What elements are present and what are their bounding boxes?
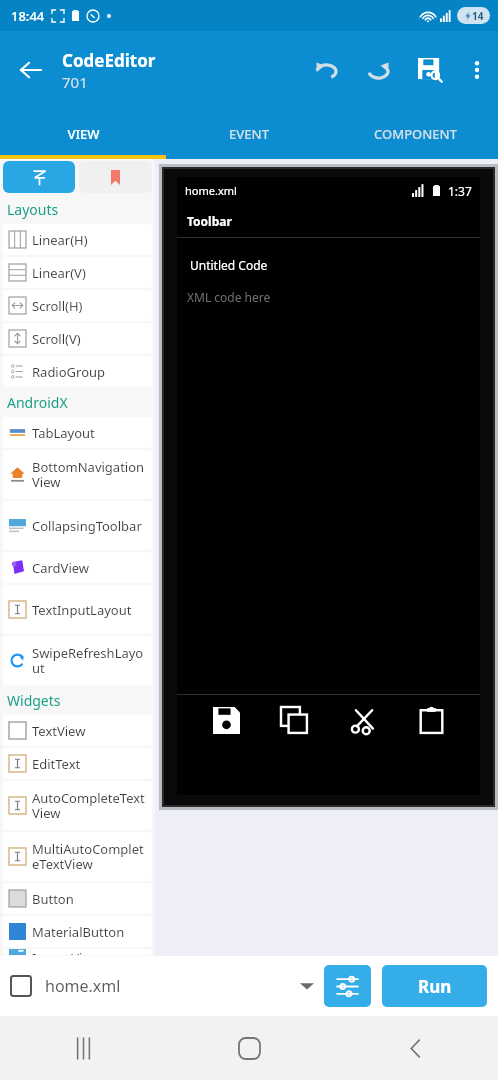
button[interactable]: EditText	[3, 748, 152, 779]
staticText: COMPONENT	[374, 125, 457, 143]
button[interactable]: MaterialButton	[3, 916, 152, 947]
button[interactable]: TabLayout	[3, 417, 152, 448]
button[interactable]: TextView	[3, 715, 152, 746]
staticText: EditText	[32, 755, 81, 773]
staticText: home.xml	[185, 183, 237, 198]
button[interactable]: Settings	[324, 965, 371, 1007]
button[interactable]: Paste	[411, 707, 451, 747]
staticText: Scroll(H)	[32, 297, 83, 315]
button[interactable]: Back	[0, 31, 62, 109]
button[interactable]: Recents	[0, 1016, 166, 1080]
button[interactable]: ImageView	[3, 949, 152, 955]
staticText: VIEW	[67, 125, 100, 143]
button[interactable]: COMPONENT	[332, 109, 498, 159]
staticText: XML code here	[187, 289, 271, 305]
staticText: 14	[472, 9, 484, 23]
staticText: TextInputLayout	[32, 601, 132, 619]
button[interactable]: Run	[382, 965, 487, 1007]
staticText: Scroll(V)	[32, 330, 81, 348]
button[interactable]: Save	[404, 44, 456, 96]
staticText: 18:44	[11, 7, 45, 25]
button[interactable]: BottomNavigationView	[3, 450, 152, 499]
staticText: RadioGroup	[32, 363, 106, 381]
button[interactable]: More options	[456, 44, 498, 96]
button[interactable]: CardView	[3, 552, 152, 583]
staticText: EVENT	[229, 125, 269, 143]
staticText: Widgets	[7, 691, 61, 710]
staticText: AndroidX	[7, 393, 68, 412]
staticText: TabLayout	[32, 424, 95, 442]
button[interactable]: Save	[206, 707, 246, 747]
staticText: Toolbar	[187, 213, 232, 229]
button[interactable]: TextInputLayout	[3, 585, 152, 634]
button[interactable]: AutoCompleteTextView	[3, 781, 152, 830]
button[interactable]: EVENT	[166, 109, 332, 159]
button[interactable]: Cut	[343, 707, 383, 747]
staticText: CollapsingToolbar	[32, 517, 142, 535]
button[interactable]: Copy	[274, 707, 314, 747]
button[interactable]: SwipeRefreshLayout	[3, 636, 152, 685]
staticText: Button	[32, 890, 74, 908]
staticText: CodeEditor	[62, 49, 156, 72]
staticText: TextView	[32, 722, 86, 740]
button[interactable]: Palette	[3, 161, 75, 193]
staticText: BottomNavigationView	[32, 458, 150, 491]
staticText: Untitled Code	[190, 257, 268, 273]
staticText: SwipeRefreshLayout	[32, 644, 150, 677]
button[interactable]: Scroll(H)	[3, 290, 152, 321]
staticText: MultiAutoCompleteTextView	[32, 840, 150, 873]
button[interactable]: Linear(H)	[3, 224, 152, 255]
staticText: Linear(V)	[32, 264, 86, 282]
button[interactable]: Redo	[352, 44, 404, 96]
button[interactable]: Button	[3, 883, 152, 914]
staticText: Linear(H)	[32, 231, 88, 249]
staticText: ImageView	[32, 949, 100, 955]
button[interactable]: home.xml	[11, 956, 324, 1016]
staticText: MaterialButton	[32, 923, 125, 941]
button[interactable]: Linear(V)	[3, 257, 152, 288]
staticText: Run	[418, 975, 452, 998]
button[interactable]: Undo	[300, 44, 352, 96]
button[interactable]: MultiAutoCompleteTextView	[3, 832, 152, 881]
button[interactable]: RadioGroup	[3, 356, 152, 387]
staticText: 1:37	[448, 183, 472, 199]
button[interactable]: Favorites	[79, 161, 152, 193]
staticText: Layouts	[7, 200, 59, 219]
staticText: AutoCompleteTextView	[32, 789, 150, 822]
staticText: home.xml	[45, 975, 121, 997]
button[interactable]: CollapsingToolbar	[3, 501, 152, 550]
staticText: CardView	[32, 559, 90, 577]
staticText: 701	[62, 72, 88, 92]
button[interactable]: Home	[166, 1016, 332, 1080]
button[interactable]: VIEW	[0, 109, 166, 159]
button[interactable]: Back	[332, 1016, 498, 1080]
button[interactable]: Scroll(V)	[3, 323, 152, 354]
